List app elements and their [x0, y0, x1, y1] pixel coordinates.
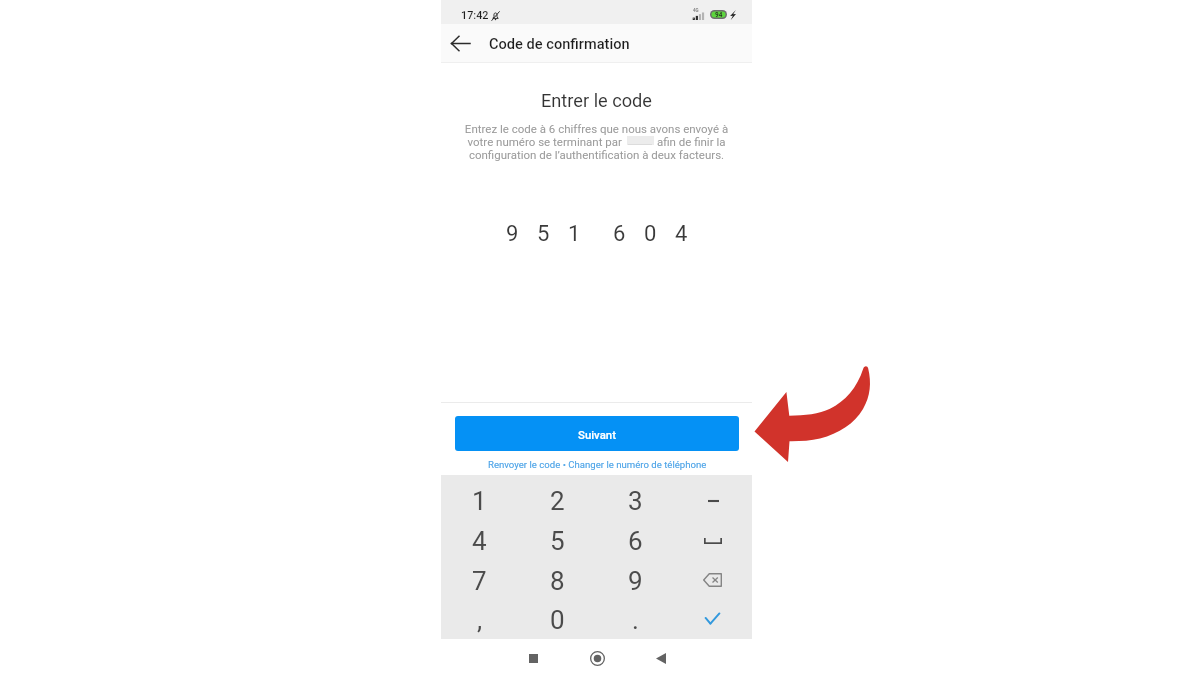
button[interactable]: Recent apps	[515, 640, 551, 675]
staticText: Entrer le code	[441, 90, 752, 111]
other: Space	[704, 538, 722, 544]
staticText: 9	[506, 221, 519, 247]
staticText: Code de confirmation	[489, 35, 630, 52]
staticText: 9	[628, 566, 643, 596]
staticText: .	[632, 605, 639, 635]
other: Dash	[708, 496, 719, 506]
staticText: 1	[472, 486, 487, 516]
staticText: 4	[675, 221, 688, 247]
button[interactable]: 5	[518, 521, 596, 561]
button[interactable]: Space	[674, 521, 752, 561]
button[interactable]: ,	[441, 601, 518, 639]
button[interactable]: Done	[674, 601, 752, 639]
button[interactable]: Renvoyer le code • Changer le numéro de …	[486, 458, 709, 471]
staticText: 17:42	[461, 9, 489, 22]
staticText: 4	[472, 526, 487, 556]
staticText: 0	[550, 605, 565, 635]
button[interactable]: 2	[518, 481, 596, 521]
button[interactable]: 7	[441, 561, 518, 601]
staticText: 94	[715, 11, 723, 19]
other: Done	[705, 613, 720, 624]
button[interactable]: 4	[441, 521, 518, 561]
staticText: Entrez le code à 6 chiffres que nous avo…	[441, 122, 752, 161]
staticText: Suivant	[578, 428, 616, 441]
button[interactable]: .	[596, 601, 674, 639]
staticText: 6	[628, 526, 643, 556]
button[interactable]: 3	[596, 481, 674, 521]
staticText: 0	[644, 221, 657, 247]
other: Backspace	[703, 573, 722, 587]
button[interactable]: Back	[446, 29, 474, 57]
staticText: 1	[568, 221, 581, 247]
staticText: 4G	[693, 8, 699, 13]
staticText: 7	[472, 566, 487, 596]
button[interactable]: Suivant	[455, 416, 739, 451]
button[interactable]: 9	[596, 561, 674, 601]
staticText: 5	[537, 221, 550, 247]
staticText: 6	[613, 221, 626, 247]
staticText: 8	[550, 566, 565, 596]
staticText: 2	[550, 486, 565, 516]
staticText: ,	[477, 605, 483, 635]
button[interactable]: 6	[596, 521, 674, 561]
staticText: 5	[550, 526, 565, 556]
staticText: 3	[628, 486, 643, 516]
button[interactable]: Back	[643, 640, 679, 675]
button[interactable]: Backspace	[674, 561, 752, 601]
button[interactable]: Home	[579, 640, 615, 675]
button[interactable]: 0	[518, 601, 596, 639]
button[interactable]: Dash	[674, 481, 752, 521]
button[interactable]: 8	[518, 561, 596, 601]
button[interactable]: 1	[441, 481, 518, 521]
